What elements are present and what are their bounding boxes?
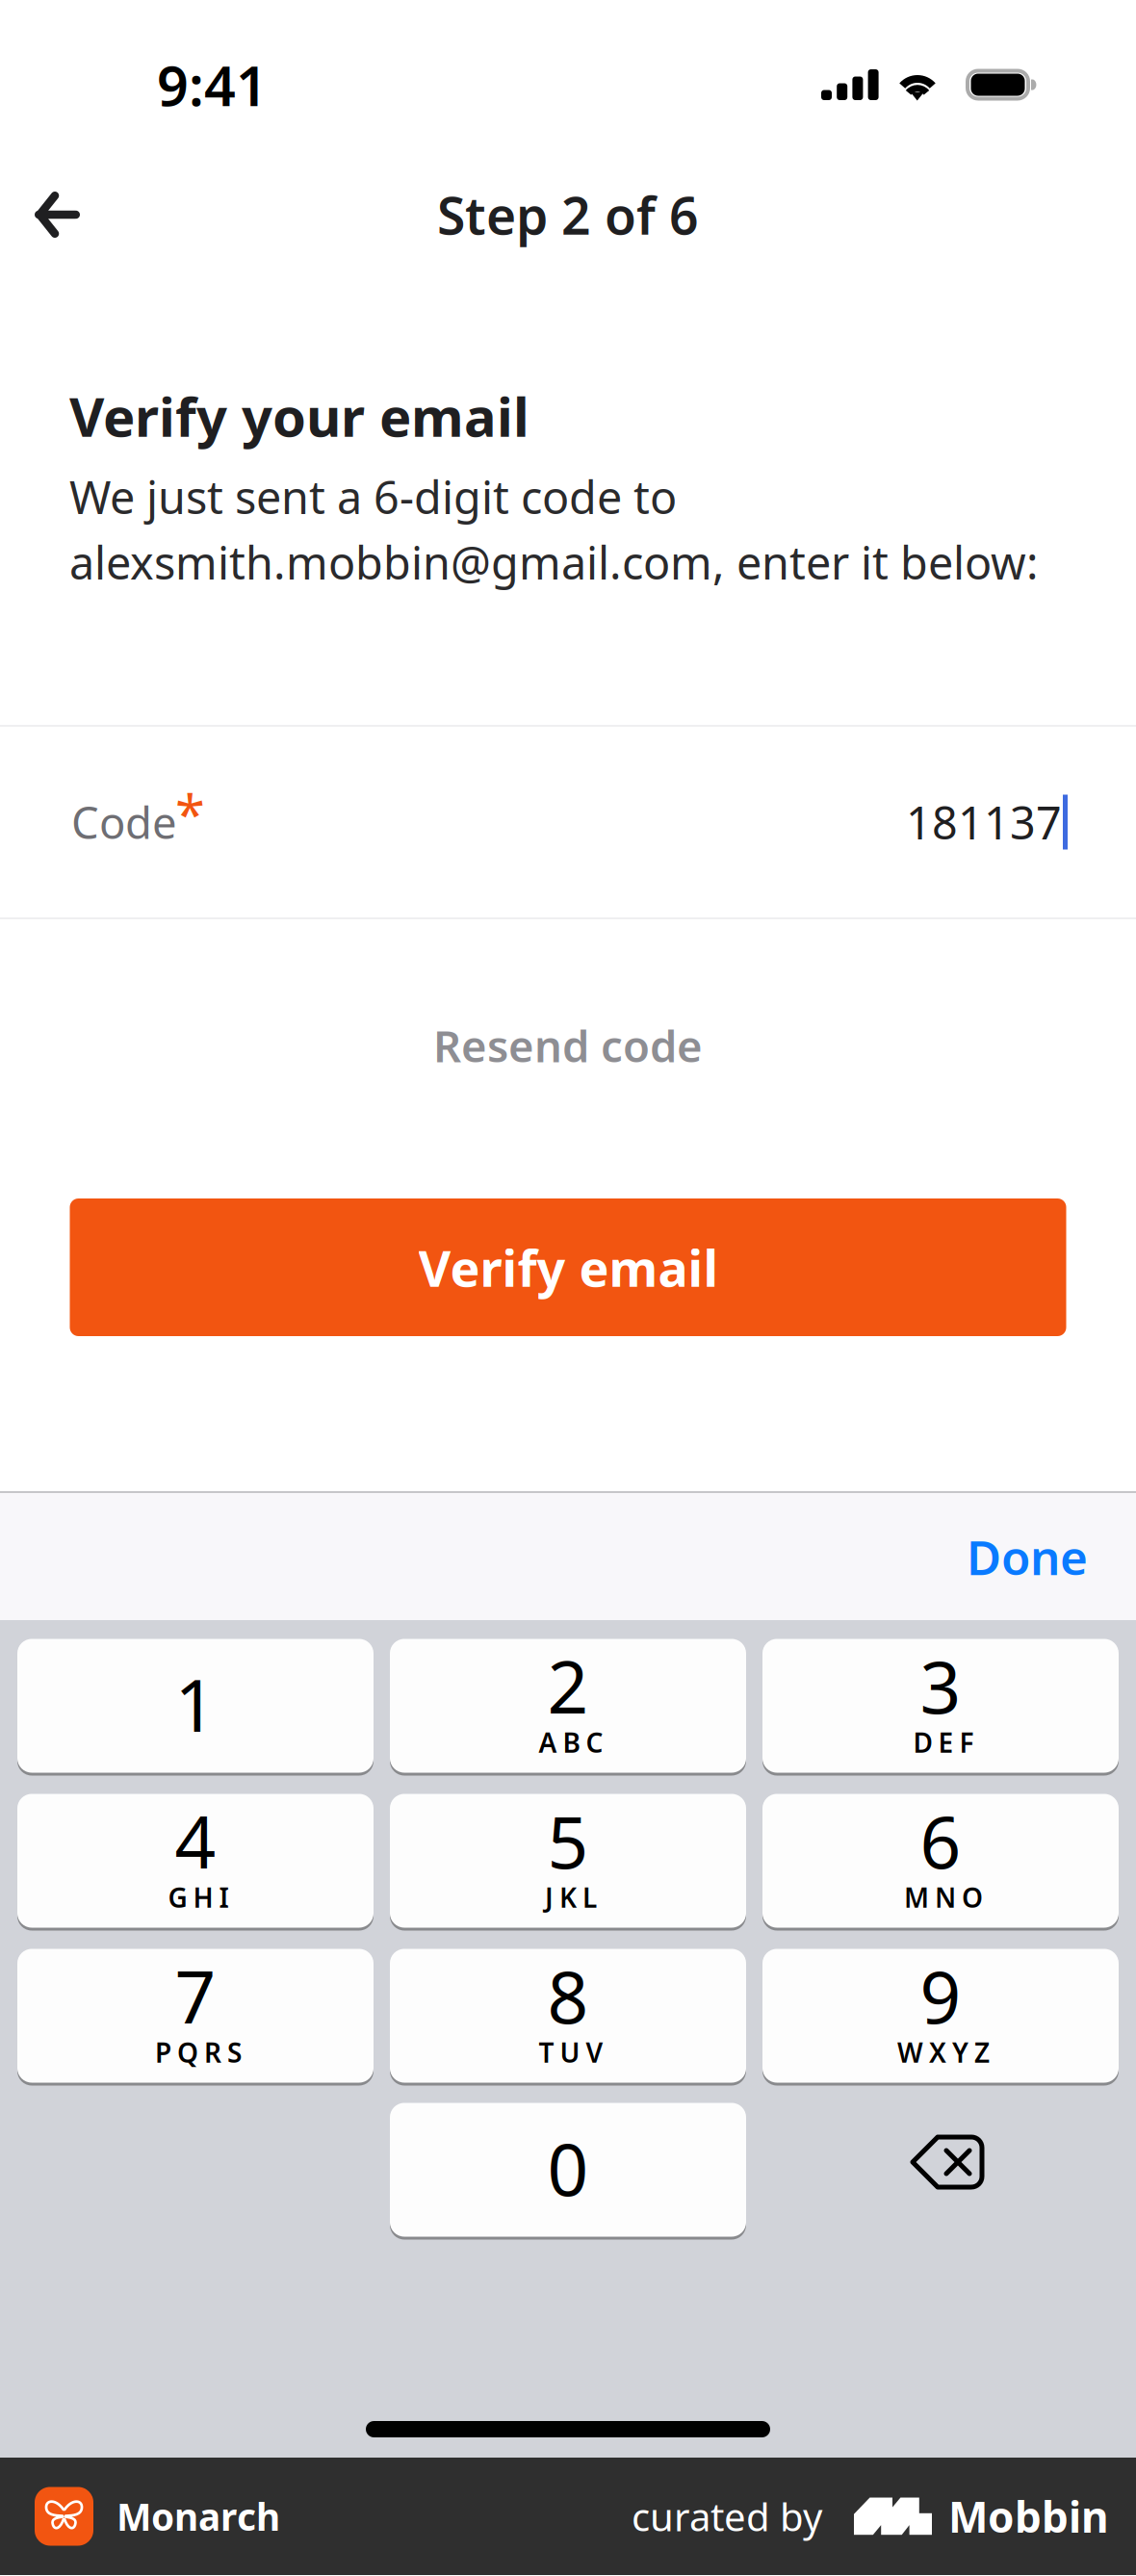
- button[interactable]: 7: [17, 1947, 374, 2084]
- staticText: 5: [547, 1793, 589, 1888]
- staticText: 3: [920, 1638, 961, 1733]
- staticText: Resend code: [433, 1016, 703, 1074]
- staticText: JKL: [545, 1879, 597, 1915]
- staticText: Step 2 of 6: [437, 181, 699, 249]
- staticText: Done: [967, 1525, 1088, 1588]
- staticText: 6: [920, 1793, 961, 1888]
- staticText: 8: [547, 1948, 589, 2043]
- button[interactable]: 9: [762, 1947, 1119, 2084]
- staticText: ABC: [539, 1724, 603, 1760]
- staticText: curated by: [632, 2491, 822, 2542]
- button[interactable]: 8: [390, 1947, 746, 2084]
- button[interactable]: Back: [0, 168, 104, 261]
- button[interactable]: 0: [390, 2101, 746, 2238]
- staticText: Mobbin: [948, 2488, 1109, 2544]
- button[interactable]: 2: [390, 1637, 746, 1774]
- staticText: Verify your email: [69, 380, 529, 452]
- staticText: We just sent a 6-digit code to: [69, 467, 677, 527]
- button[interactable]: 1: [17, 1637, 374, 1774]
- staticText: Monarch: [116, 2492, 280, 2541]
- staticText: TUV: [539, 2034, 603, 2070]
- button[interactable]: Done: [967, 1493, 1136, 1620]
- staticText: 1: [175, 1656, 216, 1752]
- button[interactable]: Delete: [762, 2101, 1119, 2238]
- staticText: 181137: [906, 792, 1062, 852]
- staticText: 4: [175, 1793, 216, 1888]
- button[interactable]: 3: [762, 1637, 1119, 1774]
- staticText: alexsmith.mobbin@gmail.com, enter it bel…: [69, 532, 1039, 592]
- staticText: 0: [547, 2120, 589, 2216]
- staticText: DEF: [913, 1724, 974, 1760]
- button[interactable]: 6: [762, 1792, 1119, 1929]
- staticText: Verify email: [418, 1234, 718, 1301]
- staticText: PQRS: [155, 2034, 242, 2070]
- staticText: 7: [175, 1948, 216, 2043]
- staticText: 9: [920, 1948, 961, 2043]
- staticText: MNO: [904, 1879, 983, 1915]
- staticText: GHI: [168, 1879, 229, 1915]
- staticText: 9:41: [157, 48, 268, 121]
- button[interactable]: 4: [17, 1792, 374, 1929]
- staticText: Code: [71, 793, 177, 851]
- staticText: *: [175, 778, 205, 849]
- button[interactable]: 5: [390, 1792, 746, 1929]
- staticText: 2: [547, 1638, 589, 1733]
- staticText: WXYZ: [897, 2034, 990, 2070]
- button[interactable]: Verify email: [70, 1198, 1066, 1336]
- button[interactable]: Resend code: [433, 1015, 703, 1076]
